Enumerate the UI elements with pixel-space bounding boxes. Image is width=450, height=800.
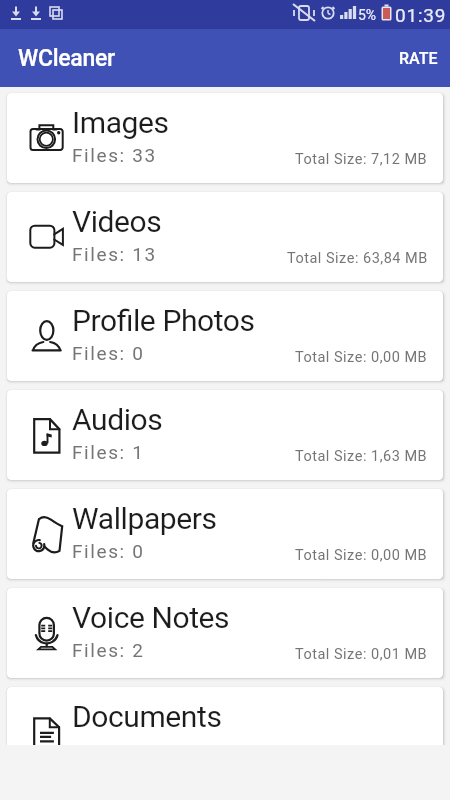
- button[interactable]: Wallpapers: [7, 489, 443, 579]
- staticText: Files: 0: [72, 342, 145, 364]
- button[interactable]: Voice Notes: [7, 588, 443, 678]
- staticText: Files: 0: [72, 540, 145, 562]
- staticText: Files: 1: [72, 441, 145, 463]
- staticText: Files: 2: [72, 639, 145, 661]
- staticText: 5%: [358, 7, 377, 23]
- button[interactable]: Documents: [7, 687, 443, 777]
- staticText: Profile Photos: [72, 303, 255, 338]
- staticText: Videos: [72, 204, 162, 239]
- staticText: Files: 33: [72, 144, 157, 166]
- staticText: WCleaner: [18, 45, 115, 72]
- staticText: Total Size: 7,12 MB: [295, 151, 428, 168]
- button[interactable]: Videos: [7, 192, 443, 282]
- staticText: Wallpapers: [72, 501, 217, 536]
- staticText: Audios: [72, 402, 163, 437]
- staticText: Total Size: 63,84 MB: [287, 250, 428, 267]
- staticText: Documents: [72, 699, 222, 734]
- button[interactable]: RATE: [387, 31, 450, 86]
- button[interactable]: Profile Photos: [7, 291, 443, 381]
- staticText: Files: 13: [72, 243, 157, 265]
- staticText: Total Size: 0,01 MB: [295, 646, 428, 663]
- button[interactable]: Images: [7, 93, 443, 183]
- staticText: RATE: [399, 49, 438, 68]
- staticText: Total Size: 1,63 MB: [295, 448, 428, 465]
- staticText: Voice Notes: [72, 600, 230, 635]
- staticText: 01:39: [395, 4, 447, 26]
- staticText: Total Size: 0,00 MB: [295, 547, 428, 564]
- button[interactable]: Audios: [7, 390, 443, 480]
- staticText: Total Size: 0,00 MB: [295, 349, 428, 366]
- staticText: Images: [72, 105, 169, 140]
